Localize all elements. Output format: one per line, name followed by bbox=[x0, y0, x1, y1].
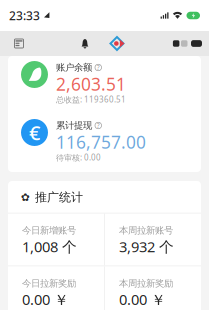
staticText: 本周拉新奖励 bbox=[119, 278, 173, 289]
staticText: 0.00 ￥ bbox=[22, 289, 69, 309]
staticText: ✿ bbox=[21, 191, 30, 203]
button[interactable]: Menu bbox=[8, 31, 30, 56]
button[interactable]: More bbox=[173, 31, 202, 56]
staticText: 待审核: 0.00 bbox=[56, 152, 101, 163]
staticText: 今日拉新奖励 bbox=[22, 278, 76, 289]
staticText: 总收益: 119360.51 bbox=[56, 94, 126, 105]
button[interactable]: Notifications bbox=[75, 31, 95, 56]
staticText: 2,603.51 bbox=[56, 72, 126, 95]
staticText: 账户余额 bbox=[56, 62, 92, 73]
staticText: 3,932 个 bbox=[119, 237, 174, 256]
staticText: € bbox=[29, 119, 40, 146]
staticText: 累计提现 bbox=[56, 120, 92, 131]
staticText: ? bbox=[97, 121, 100, 130]
staticText: 116,757.00 bbox=[56, 130, 146, 153]
button[interactable]: Home bbox=[106, 31, 128, 56]
staticText: ? bbox=[97, 63, 100, 72]
staticText: 本周拉新账号 bbox=[119, 225, 173, 236]
staticText: 推广统计 bbox=[35, 190, 83, 204]
staticText: 0.00 ￥ bbox=[119, 289, 166, 309]
staticText: 今日新增账号 bbox=[22, 225, 76, 236]
staticText: 1,008 个 bbox=[22, 237, 77, 256]
staticText: 23:33 bbox=[9, 7, 40, 23]
